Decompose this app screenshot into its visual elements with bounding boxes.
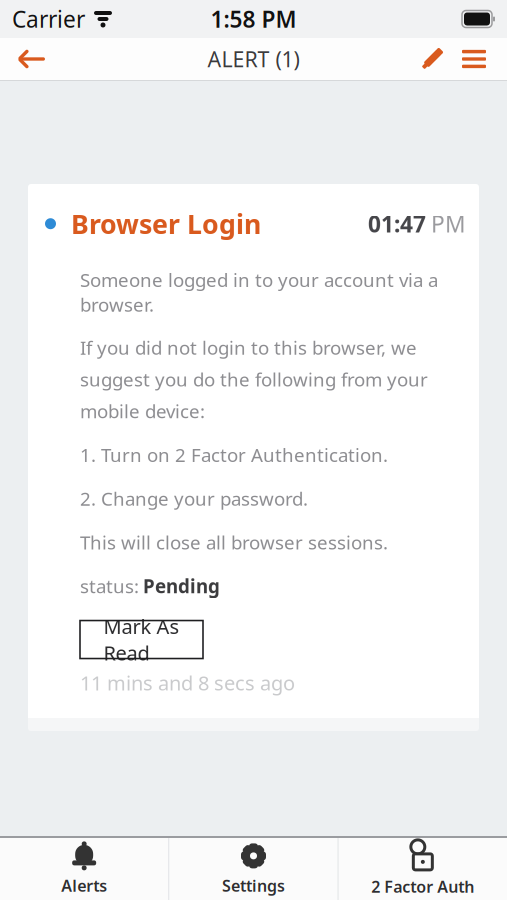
button[interactable]: Edit [413, 38, 451, 80]
staticText: 11 mins and 8 secs ago [80, 669, 295, 696]
staticText: Someone logged in to your account via a … [80, 267, 438, 317]
staticText: If you did not login to this browser, we… [80, 335, 428, 423]
staticText: Settings [222, 875, 285, 896]
button[interactable]: Mark As Read [80, 620, 203, 658]
button[interactable]: Settings [169, 838, 338, 900]
staticText: 01:47 [368, 209, 426, 239]
button[interactable]: Alerts [0, 838, 168, 900]
staticText: 2. Change your password. [80, 486, 308, 511]
staticText: ALERT (1) [207, 45, 299, 73]
staticText: 2 Factor Auth [371, 876, 474, 897]
staticText: 1:58 PM [210, 4, 296, 34]
staticText: Browser Login [71, 206, 261, 241]
staticText: PM [431, 209, 466, 239]
staticText: Mark As Read [103, 613, 179, 666]
staticText: status: [80, 574, 139, 598]
button[interactable]: 2 Factor Auth [339, 838, 507, 900]
button[interactable]: Menu [451, 38, 497, 80]
staticText: Pending [143, 574, 220, 598]
staticText: Alerts [61, 875, 107, 896]
staticText: 1. Turn on 2 Factor Authentication. [80, 442, 388, 467]
staticText: This will close all browser sessions. [80, 530, 388, 555]
staticText: Carrier [12, 4, 85, 34]
button[interactable]: Back [4, 38, 60, 80]
